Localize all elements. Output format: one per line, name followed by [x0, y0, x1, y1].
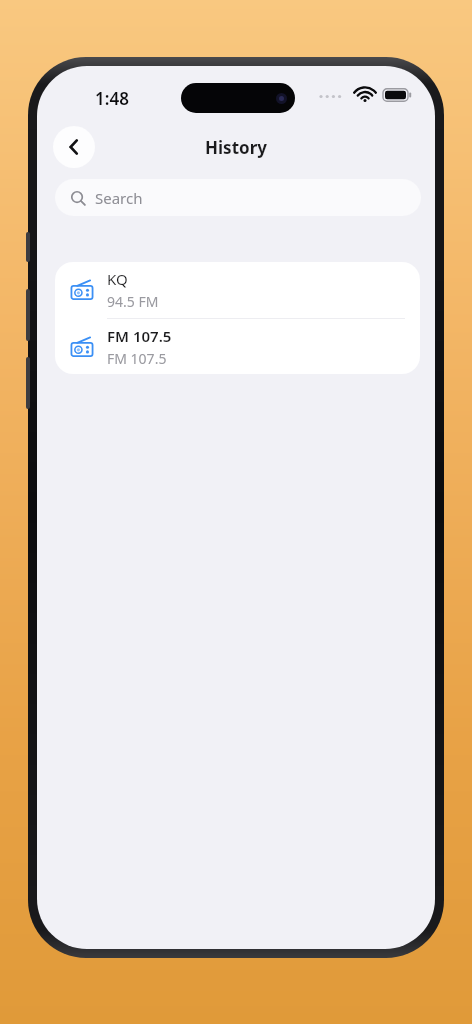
staticText: History	[205, 136, 267, 159]
button[interactable]: FM 107.5	[55, 319, 420, 374]
staticText: FM 107.5	[107, 326, 172, 346]
button[interactable]: Search	[55, 179, 421, 216]
staticText: FM 107.5	[107, 349, 167, 368]
staticText: 1:48	[95, 87, 129, 110]
staticText: Search	[95, 188, 143, 208]
button[interactable]: KQ	[55, 262, 420, 318]
staticText: 94.5 FM	[107, 292, 159, 311]
staticText: KQ	[107, 269, 128, 289]
button[interactable]: Back	[53, 126, 95, 168]
